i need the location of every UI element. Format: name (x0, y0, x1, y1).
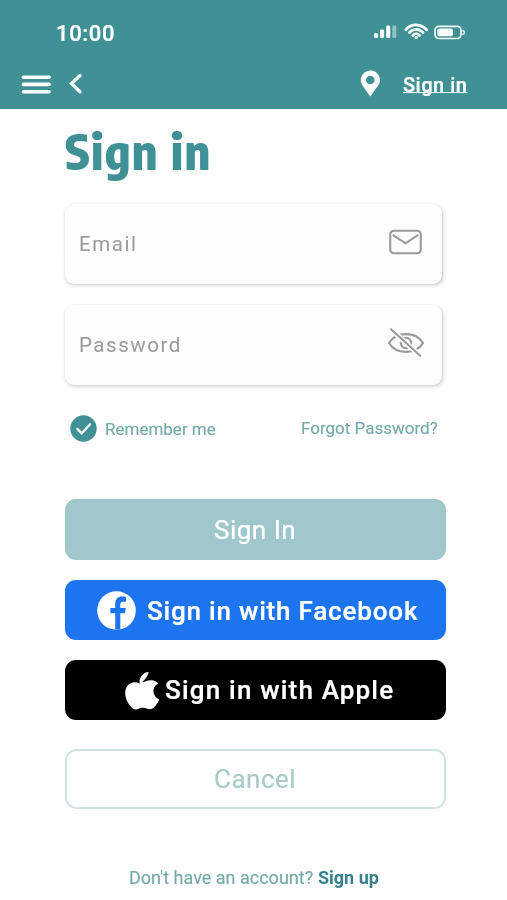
button[interactable]: Sign in with Facebook (65, 580, 446, 640)
staticText: Sign in (403, 73, 468, 96)
button[interactable]: Email (65, 204, 442, 284)
button[interactable]: Sign In (65, 499, 446, 560)
staticText: Cancel (214, 764, 297, 794)
button[interactable]: Cancel (65, 749, 446, 809)
button[interactable]: Sign in with Apple (65, 660, 446, 720)
button[interactable]: Forgot Password? (301, 418, 438, 438)
staticText: Sign in (65, 121, 212, 181)
button[interactable]: Password (65, 305, 442, 385)
button[interactable]: Remember me (70, 415, 216, 442)
staticText: Sign In (214, 515, 297, 545)
button[interactable]: Back (62, 64, 98, 104)
staticText: Email (79, 232, 138, 256)
staticText: Password (79, 333, 182, 357)
button[interactable]: Sign in (396, 70, 475, 99)
button[interactable]: Sign up (318, 867, 379, 888)
staticText: Remember me (105, 419, 216, 439)
staticText: Sign in with Apple (165, 675, 395, 705)
staticText: Sign up (318, 867, 379, 888)
button[interactable]: Location (357, 66, 385, 102)
staticText: Sign in with Facebook (147, 596, 419, 626)
button[interactable]: Menu (12, 64, 60, 104)
staticText: 10:00 (56, 21, 116, 47)
staticText: Don't have an account? (129, 867, 318, 888)
staticText: Forgot Password? (301, 418, 438, 438)
